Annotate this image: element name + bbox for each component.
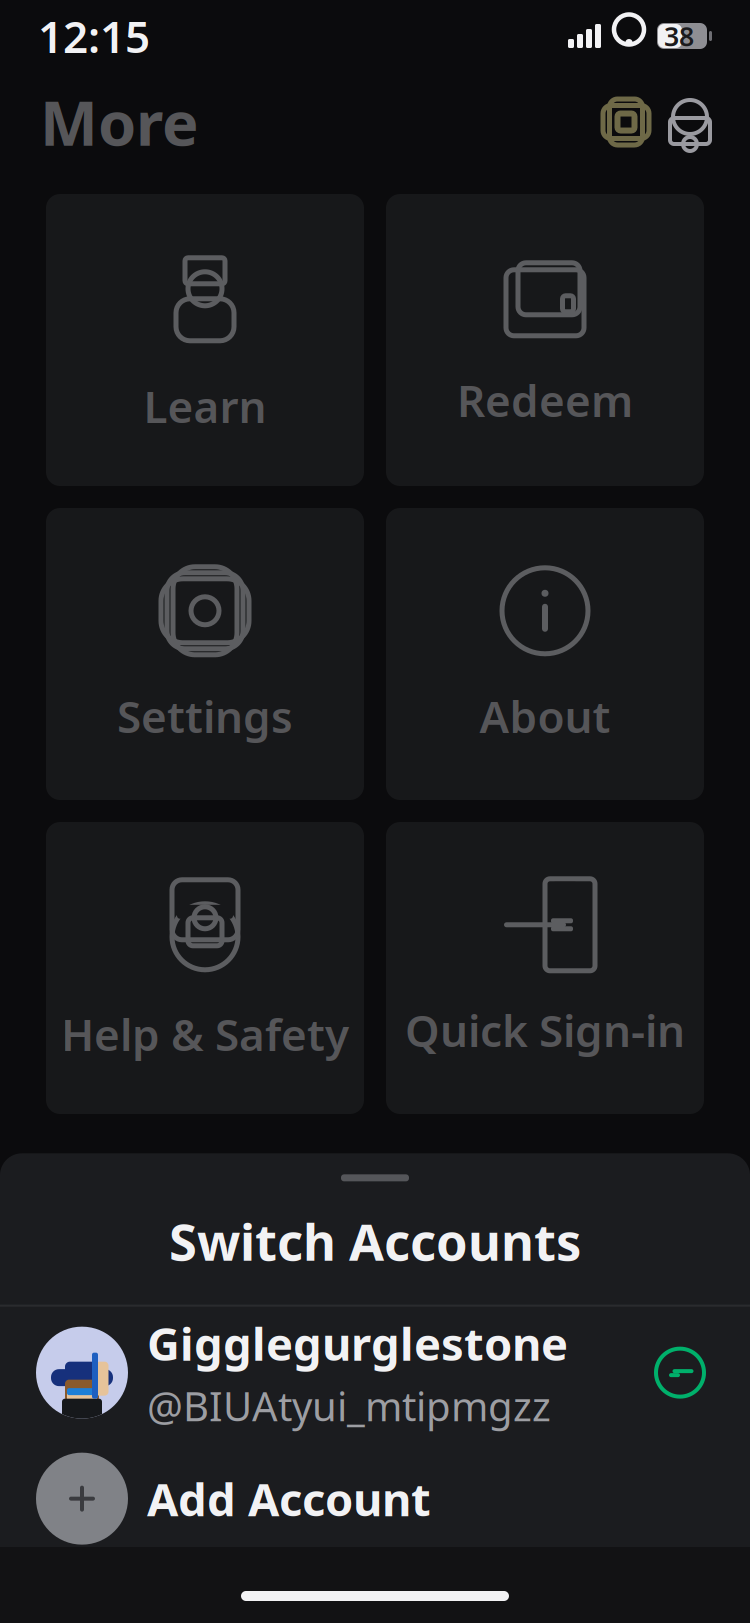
staticText: @BIUAtyui_mtipmgzz (147, 1379, 551, 1432)
staticText: Add Account (147, 1468, 431, 1529)
button[interactable]: Quick Sign-in (386, 822, 704, 1114)
staticText: About (479, 687, 610, 745)
button[interactable]: Robux (594, 90, 658, 154)
staticText: Gigglegurglestone (147, 1313, 568, 1373)
button[interactable]: About (386, 508, 704, 800)
button[interactable]: Help & Safety (46, 822, 364, 1114)
button[interactable]: Settings (46, 508, 364, 800)
staticText: Switch Accounts (169, 1207, 581, 1275)
staticText: 12:15 (38, 7, 150, 65)
button[interactable]: Learn (46, 194, 364, 486)
button[interactable]: Gigglegurglestone (0, 1307, 750, 1439)
staticText: Settings (117, 687, 293, 745)
staticText: Redeem (457, 371, 633, 429)
staticText: 38 (664, 18, 694, 54)
staticText: Help & Safety (61, 1005, 349, 1063)
staticText: Quick Sign-in (405, 1001, 685, 1059)
staticText: Learn (143, 377, 266, 435)
button[interactable]: Notifications (658, 90, 722, 154)
button[interactable]: Redeem (386, 194, 704, 486)
button[interactable]: Add Account (0, 1439, 750, 1559)
staticText: More (40, 81, 199, 163)
